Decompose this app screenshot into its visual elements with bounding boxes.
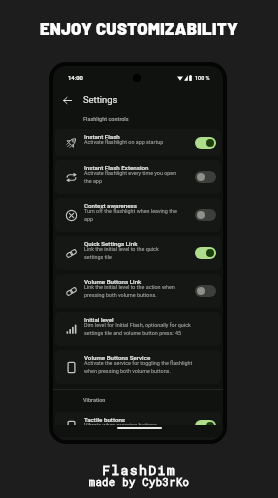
button[interactable]: Volume Buttons Link bbox=[55, 274, 221, 308]
button[interactable]: Instant Flash Extension bbox=[55, 160, 221, 194]
staticText: Dim level for Initial Flash, optionally … bbox=[84, 322, 191, 337]
staticText: Settings bbox=[83, 94, 118, 105]
button[interactable]: Volume Buttons Service bbox=[55, 350, 221, 384]
staticText: Link the initial level to the action whe… bbox=[84, 284, 175, 299]
button[interactable]: Turn on bbox=[195, 285, 216, 297]
button[interactable]: Tactile buttons bbox=[55, 412, 221, 440]
button[interactable]: Turn off bbox=[195, 247, 216, 259]
staticText: Context awareness bbox=[84, 202, 137, 209]
staticText: Quick Settings Link bbox=[84, 240, 138, 247]
button[interactable]: Instant Flash bbox=[55, 129, 221, 156]
button[interactable]: Turn off bbox=[195, 137, 216, 149]
staticText: 100 % bbox=[195, 75, 210, 81]
staticText: Instant Flash bbox=[84, 133, 120, 140]
staticText: Tactile buttons bbox=[84, 416, 126, 423]
staticText: Activate the service for toggling the fl… bbox=[84, 360, 193, 375]
staticText: Volume Buttons Link bbox=[84, 278, 142, 285]
button[interactable]: Back bbox=[60, 93, 75, 108]
staticText: Link the initial level to the quick sett… bbox=[84, 246, 159, 261]
staticText: Vibration bbox=[83, 397, 106, 403]
staticText: made by Cyb3rKo bbox=[0, 475, 278, 489]
staticText: 14:00 bbox=[68, 75, 83, 82]
button[interactable]: Quick Settings Link bbox=[55, 236, 221, 270]
staticText: Flashlight controls bbox=[83, 116, 129, 122]
staticText: Turn off the flashlight when leaving the… bbox=[84, 208, 177, 223]
button[interactable]: Context awareness bbox=[55, 198, 221, 232]
staticText: FlashDim bbox=[0, 461, 278, 478]
staticText: Initial level bbox=[84, 316, 114, 323]
staticText: Instant Flash Extension bbox=[84, 164, 149, 171]
staticText: Vibrate when pressing buttons bbox=[84, 422, 157, 428]
staticText: Activate flashlight every time you open … bbox=[84, 170, 177, 185]
staticText: Activate flashlight on app startup bbox=[84, 139, 164, 145]
staticText: ENJOY CUSTOMIZABILITY bbox=[0, 18, 278, 38]
button[interactable]: Turn on bbox=[195, 171, 216, 183]
button[interactable]: Initial level bbox=[55, 312, 221, 346]
staticText: Volume Buttons Service bbox=[84, 354, 151, 361]
button[interactable]: Turn off bbox=[195, 420, 216, 432]
button[interactable]: Turn on bbox=[195, 209, 216, 221]
